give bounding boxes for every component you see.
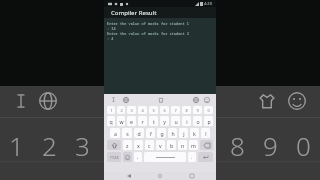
- button[interactable]: Emoji: [123, 152, 132, 162]
- staticText: d: [137, 130, 141, 137]
- button[interactable]: Back: [122, 172, 136, 180]
- button[interactable]: .: [188, 152, 196, 162]
- button[interactable]: Emoji: [202, 95, 211, 104]
- staticText: o: [196, 118, 200, 125]
- button[interactable]: 6: [160, 106, 169, 114]
- staticText: v: [159, 142, 162, 149]
- staticText: 2: [42, 128, 57, 163]
- button[interactable]: Text editing: [109, 95, 118, 104]
- button[interactable]: m: [189, 140, 198, 150]
- button[interactable]: j: [179, 128, 188, 138]
- button[interactable]: k: [190, 128, 199, 138]
- staticText: 7: [174, 108, 177, 113]
- button[interactable]: g: [157, 128, 166, 138]
- staticText: z: [126, 142, 129, 149]
- button[interactable]: q: [107, 116, 115, 126]
- staticText: 4:20: [204, 1, 212, 6]
- button[interactable]: 1: [107, 106, 115, 114]
- button[interactable]: ,: [134, 152, 142, 162]
- button[interactable]: b: [167, 140, 176, 150]
- button[interactable]: v: [156, 140, 165, 150]
- staticText: 8: [230, 128, 245, 163]
- staticText: 1: [110, 108, 113, 113]
- button[interactable]: h: [168, 128, 177, 138]
- button[interactable]: Home: [153, 172, 167, 180]
- staticText: f: [150, 130, 152, 137]
- button[interactable]: f: [146, 128, 155, 138]
- staticText: t: [153, 118, 155, 125]
- button[interactable]: Backspace: [200, 140, 213, 150]
- button[interactable]: c: [145, 140, 154, 150]
- button[interactable]: ?123: [107, 152, 121, 162]
- staticText: h: [171, 130, 175, 137]
- button[interactable]: p: [204, 116, 213, 126]
- staticText: .: [191, 154, 193, 161]
- staticText: 3: [75, 128, 90, 163]
- button[interactable]: u: [171, 116, 180, 126]
- staticText: 9: [263, 128, 278, 163]
- button[interactable]: Settings: [191, 95, 200, 104]
- button[interactable]: a: [110, 128, 120, 138]
- staticText: m: [191, 142, 196, 149]
- staticText: a: [114, 130, 117, 137]
- button[interactable]: o: [193, 116, 202, 126]
- staticText: r: [141, 118, 144, 125]
- staticText: q: [109, 118, 113, 125]
- staticText: y: [163, 118, 166, 125]
- button[interactable]: d: [134, 128, 144, 138]
- button[interactable]: Stickers: [156, 95, 165, 104]
- button[interactable]: y: [160, 116, 169, 126]
- staticText: 2: [120, 108, 123, 113]
- staticText: j: [183, 130, 185, 137]
- staticText: x: [137, 142, 140, 149]
- button[interactable]: Shift: [107, 140, 121, 150]
- button[interactable]: z: [123, 140, 132, 150]
- staticText: 1: [9, 128, 24, 163]
- button[interactable]: 2: [117, 106, 125, 114]
- staticText: l: [205, 130, 207, 137]
- button[interactable]: 4: [138, 106, 147, 114]
- staticText: : 4: [107, 36, 114, 41]
- staticText: b: [170, 142, 174, 149]
- button[interactable]: r: [138, 116, 147, 126]
- staticText: u: [174, 118, 178, 125]
- staticText: Enter the value of marks for student 1: [107, 21, 189, 26]
- button[interactable]: 3: [127, 106, 136, 114]
- staticText: : 34: [107, 26, 116, 31]
- button[interactable]: e: [127, 116, 136, 126]
- button[interactable]: w: [117, 116, 125, 126]
- button[interactable]: i: [182, 116, 191, 126]
- staticText: 9: [196, 108, 199, 113]
- button[interactable]: l: [201, 128, 210, 138]
- staticText: k: [193, 130, 196, 137]
- staticText: i: [186, 118, 188, 125]
- staticText: 6: [163, 108, 166, 113]
- staticText: w: [119, 118, 124, 125]
- button[interactable]: n: [178, 140, 187, 150]
- button[interactable]: Recent apps: [185, 172, 199, 180]
- button[interactable]: Enter: [198, 152, 213, 162]
- staticText: ,: [137, 154, 139, 161]
- staticText: ?123: [110, 155, 119, 160]
- button[interactable]: Space: [144, 152, 186, 162]
- staticText: s: [126, 130, 129, 137]
- button[interactable]: s: [122, 128, 132, 138]
- staticText: n: [181, 142, 185, 149]
- button[interactable]: 5: [149, 106, 158, 114]
- staticText: c: [148, 142, 151, 149]
- button[interactable]: x: [134, 140, 143, 150]
- button[interactable]: 8: [182, 106, 191, 114]
- staticText: Compiler Result: [111, 9, 157, 17]
- button[interactable]: 9: [193, 106, 202, 114]
- staticText: 4: [141, 108, 144, 113]
- button[interactable]: 0: [204, 106, 213, 114]
- button[interactable]: t: [149, 116, 158, 126]
- staticText: Enter the value of marks for student 2: [107, 31, 189, 36]
- staticText: 0: [207, 108, 210, 113]
- staticText: g: [160, 130, 164, 137]
- staticText: e: [130, 118, 133, 125]
- staticText: 0: [296, 128, 311, 163]
- button[interactable]: Change language: [121, 95, 130, 104]
- button[interactable]: 7: [171, 106, 180, 114]
- staticText: p: [207, 118, 211, 125]
